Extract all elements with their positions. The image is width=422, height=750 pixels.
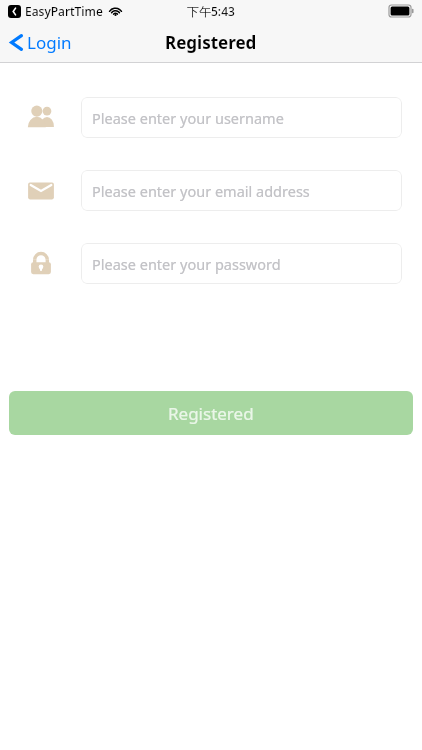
other: Email [26,176,56,206]
staticText: Please enter your username [92,108,284,128]
other: Password [26,249,56,279]
staticText: Please enter your email address [92,181,310,201]
staticText: Registered [165,31,257,54]
staticText: EasyPartTime [25,3,103,19]
staticText: Login [27,31,72,54]
button[interactable]: Login [10,31,72,54]
other: Username [26,103,56,133]
staticText: Please enter your password [92,254,281,274]
button[interactable]: Please enter your password [81,243,402,284]
staticText: Registered [168,402,254,425]
staticText: 下午5:43 [187,3,235,19]
button[interactable]: Please enter your email address [81,170,402,211]
button[interactable]: Registered [9,391,413,435]
button[interactable]: Please enter your username [81,97,402,138]
